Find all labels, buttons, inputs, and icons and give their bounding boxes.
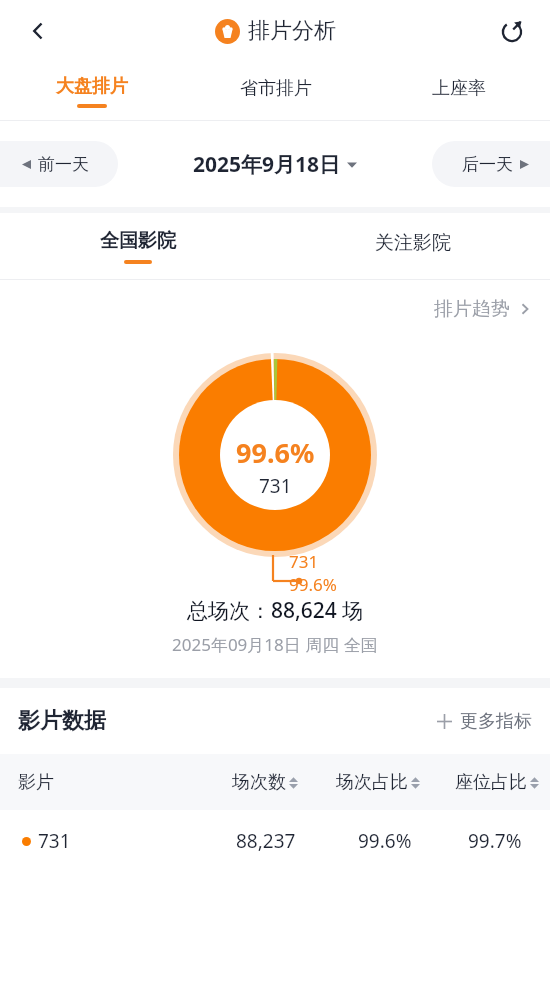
staticText: 排片分析	[248, 17, 336, 45]
staticText: 大盘排片	[56, 75, 128, 98]
staticText: 省市排片	[240, 77, 312, 100]
button[interactable]: 排片趋势	[434, 297, 532, 321]
staticText: 前一天	[38, 154, 89, 175]
staticText: 场次数	[232, 771, 286, 794]
staticText: 更多指标	[460, 710, 532, 733]
staticText: 731	[38, 828, 71, 854]
staticText: 上座率	[432, 77, 486, 100]
button[interactable]: 大盘排片	[0, 62, 184, 120]
button[interactable]: 后一天	[432, 141, 550, 187]
staticText: 场次占比	[336, 771, 408, 794]
button[interactable]: 全国影院	[0, 213, 275, 279]
staticText: 影片	[18, 771, 54, 794]
button[interactable]: 省市排片	[184, 62, 367, 120]
button[interactable]: 场次占比	[336, 771, 420, 794]
staticText: 99.6%	[289, 573, 337, 596]
staticText: 后一天	[462, 154, 513, 175]
button[interactable]: 场次数	[232, 771, 298, 794]
staticText: 2025年09月18日 周四 全国	[172, 633, 378, 656]
button[interactable]: 731	[0, 810, 550, 872]
button[interactable]: 座位占比	[455, 771, 539, 794]
button[interactable]: Share	[490, 9, 534, 53]
button[interactable]: 2025年9月18日	[193, 150, 357, 179]
staticText: 731	[259, 473, 292, 499]
staticText: 99.7%	[468, 828, 522, 854]
staticText: 99.6%	[358, 828, 412, 854]
staticText: 731	[289, 550, 319, 573]
staticText: 座位占比	[455, 771, 527, 794]
staticText: 99.6%	[236, 434, 315, 471]
staticText: 排片趋势	[434, 297, 510, 321]
staticText: 2025年9月18日	[193, 150, 341, 179]
staticText: 关注影院	[375, 231, 451, 255]
button[interactable]: Back	[16, 9, 60, 53]
staticText: 88,237	[236, 828, 296, 854]
button[interactable]: 前一天	[0, 141, 118, 187]
button[interactable]: 更多指标	[437, 710, 532, 733]
button[interactable]: 关注影院	[275, 213, 550, 279]
staticText: 总场次：88,624 场	[187, 596, 364, 625]
staticText: 全国影院	[100, 229, 176, 253]
staticText: 影片数据	[18, 707, 106, 735]
button[interactable]: 上座率	[367, 62, 550, 120]
